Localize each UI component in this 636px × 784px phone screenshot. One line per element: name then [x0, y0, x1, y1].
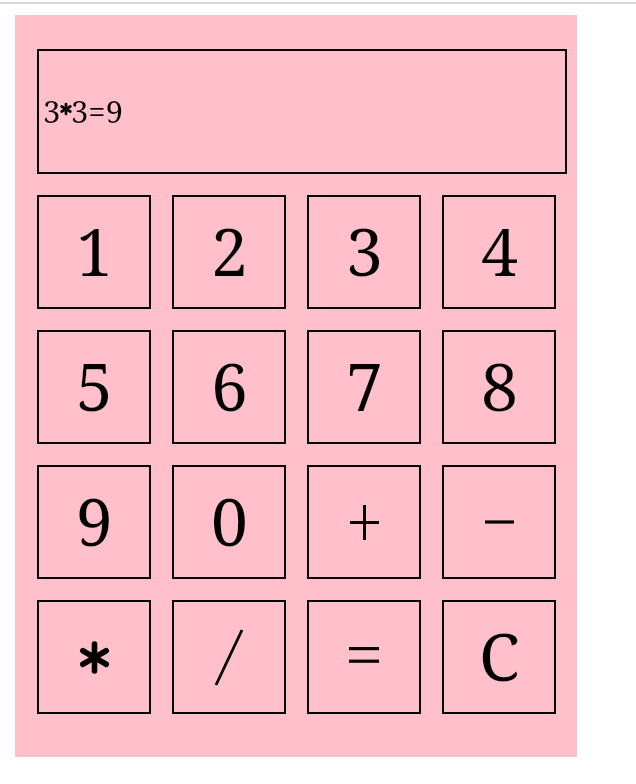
button[interactable]: 8 [442, 330, 556, 444]
staticText: 5 [76, 340, 113, 430]
button[interactable]: 5 [37, 330, 151, 444]
button[interactable]: 4 [442, 195, 556, 309]
staticText: C [479, 610, 520, 700]
button[interactable]: 3 [307, 195, 421, 309]
button[interactable]: 9 [37, 465, 151, 579]
staticText: 1 [76, 205, 113, 295]
staticText: 4 [481, 205, 518, 295]
button[interactable]: 7 [307, 330, 421, 444]
staticText: 3 [43, 90, 61, 132]
button[interactable] [172, 600, 286, 714]
button[interactable] [307, 465, 421, 579]
button[interactable]: 6 [172, 330, 286, 444]
staticText: 7 [346, 340, 383, 430]
button[interactable] [37, 600, 151, 714]
button[interactable] [307, 600, 421, 714]
button[interactable]: 2 [172, 195, 286, 309]
staticText: 6 [211, 340, 248, 430]
staticText: 8 [481, 340, 518, 430]
button[interactable]: 1 [37, 195, 151, 309]
button[interactable] [442, 465, 556, 579]
staticText: 3 [346, 205, 383, 295]
staticText: 3=9 [71, 90, 123, 132]
button[interactable]: C [442, 600, 556, 714]
staticText: 9 [76, 475, 113, 565]
staticText: 0 [211, 475, 248, 565]
button[interactable]: 0 [172, 465, 286, 579]
staticText: 2 [211, 205, 248, 295]
button[interactable]: 3 [37, 49, 567, 174]
